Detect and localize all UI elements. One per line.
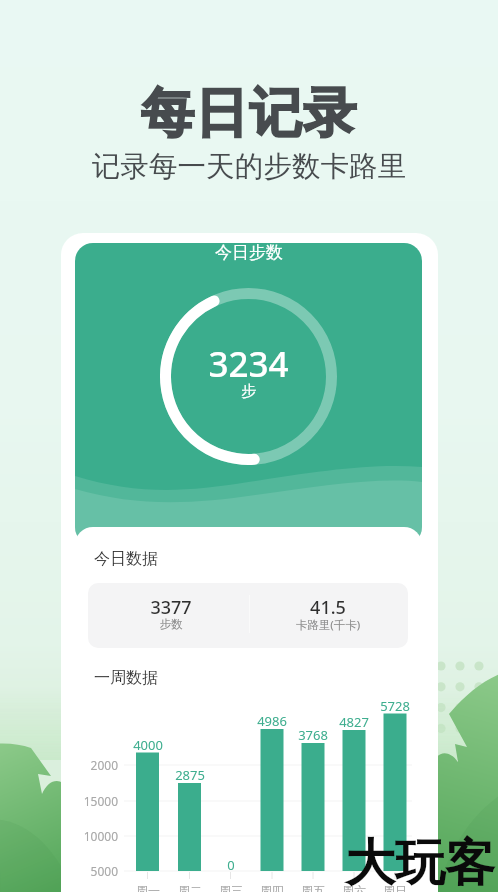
staticText: 周五	[289, 883, 337, 892]
staticText: 41.5	[248, 595, 408, 620]
staticText: 15000	[78, 793, 118, 809]
staticText: 周日	[371, 883, 419, 892]
staticText: 4986	[248, 712, 296, 730]
staticText: 2000	[78, 757, 118, 773]
staticText: 今日数据	[94, 549, 158, 569]
staticText: 一周数据	[94, 668, 158, 688]
staticText: 周一	[124, 883, 172, 892]
staticText: 3234	[75, 340, 422, 388]
staticText: 周二	[166, 883, 214, 892]
staticText: 周四	[248, 883, 296, 892]
staticText: 步	[75, 382, 422, 401]
staticText: 今日步数	[215, 243, 283, 263]
button[interactable]: 3377	[88, 583, 408, 648]
staticText: 5728	[371, 697, 419, 715]
staticText: 步数	[88, 617, 254, 631]
staticText: 周六	[330, 883, 378, 892]
staticText: 4000	[124, 736, 172, 754]
staticText: 大玩客	[345, 832, 495, 892]
staticText: 每日记录	[0, 80, 498, 147]
staticText: 3377	[88, 595, 254, 620]
staticText: 0	[207, 856, 255, 874]
staticText: 3768	[289, 726, 337, 744]
staticText: 卡路里(千卡)	[248, 617, 408, 633]
staticText: 记录每一天的步数卡路里	[0, 149, 498, 185]
staticText: 2875	[166, 766, 214, 784]
staticText: 4827	[330, 713, 378, 731]
staticText: 周三	[207, 883, 255, 892]
staticText: 10000	[78, 828, 118, 844]
staticText: 5000	[78, 863, 118, 879]
